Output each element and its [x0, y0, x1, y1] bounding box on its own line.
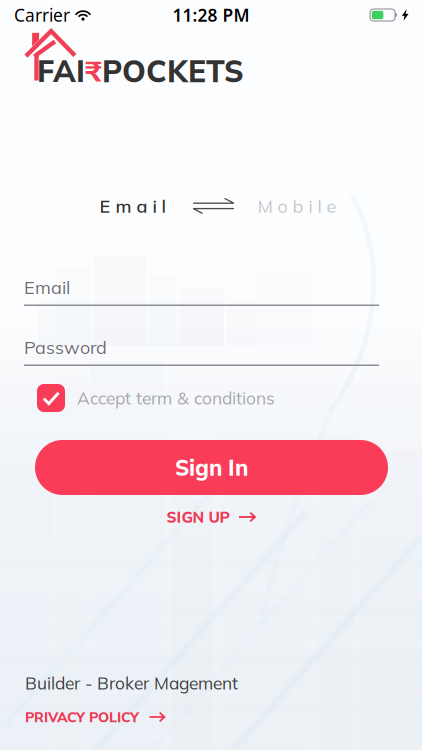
button[interactable]: Accept term & conditions — [37, 383, 317, 413]
staticText: PRIVACY POLICY — [25, 708, 139, 726]
staticText: Carrier — [14, 3, 70, 26]
button[interactable]: Sign In — [35, 440, 388, 495]
staticText: M o b i l e — [257, 195, 336, 217]
staticText: Password — [24, 336, 107, 359]
button[interactable]: E m a i l — [99, 189, 165, 223]
staticText: FAI — [37, 52, 85, 90]
staticText: SIGN UP — [166, 507, 229, 527]
staticText: E m a i l — [99, 195, 165, 217]
staticText: ₹ — [85, 53, 102, 88]
staticText: 11:28 PM — [172, 3, 249, 26]
button[interactable]: PRIVACY POLICY — [25, 705, 225, 729]
button[interactable]: M o b i l e — [257, 189, 336, 223]
staticText: Sign In — [175, 454, 248, 481]
button[interactable]: Switch between email and mobile login — [192, 193, 234, 219]
staticText: Accept term & conditions — [77, 387, 275, 409]
button[interactable]: SIGN UP — [0, 505, 422, 529]
staticText: POCKETS — [102, 52, 244, 90]
staticText: Email — [24, 276, 70, 299]
staticText: Builder - Broker Magement — [25, 672, 238, 694]
